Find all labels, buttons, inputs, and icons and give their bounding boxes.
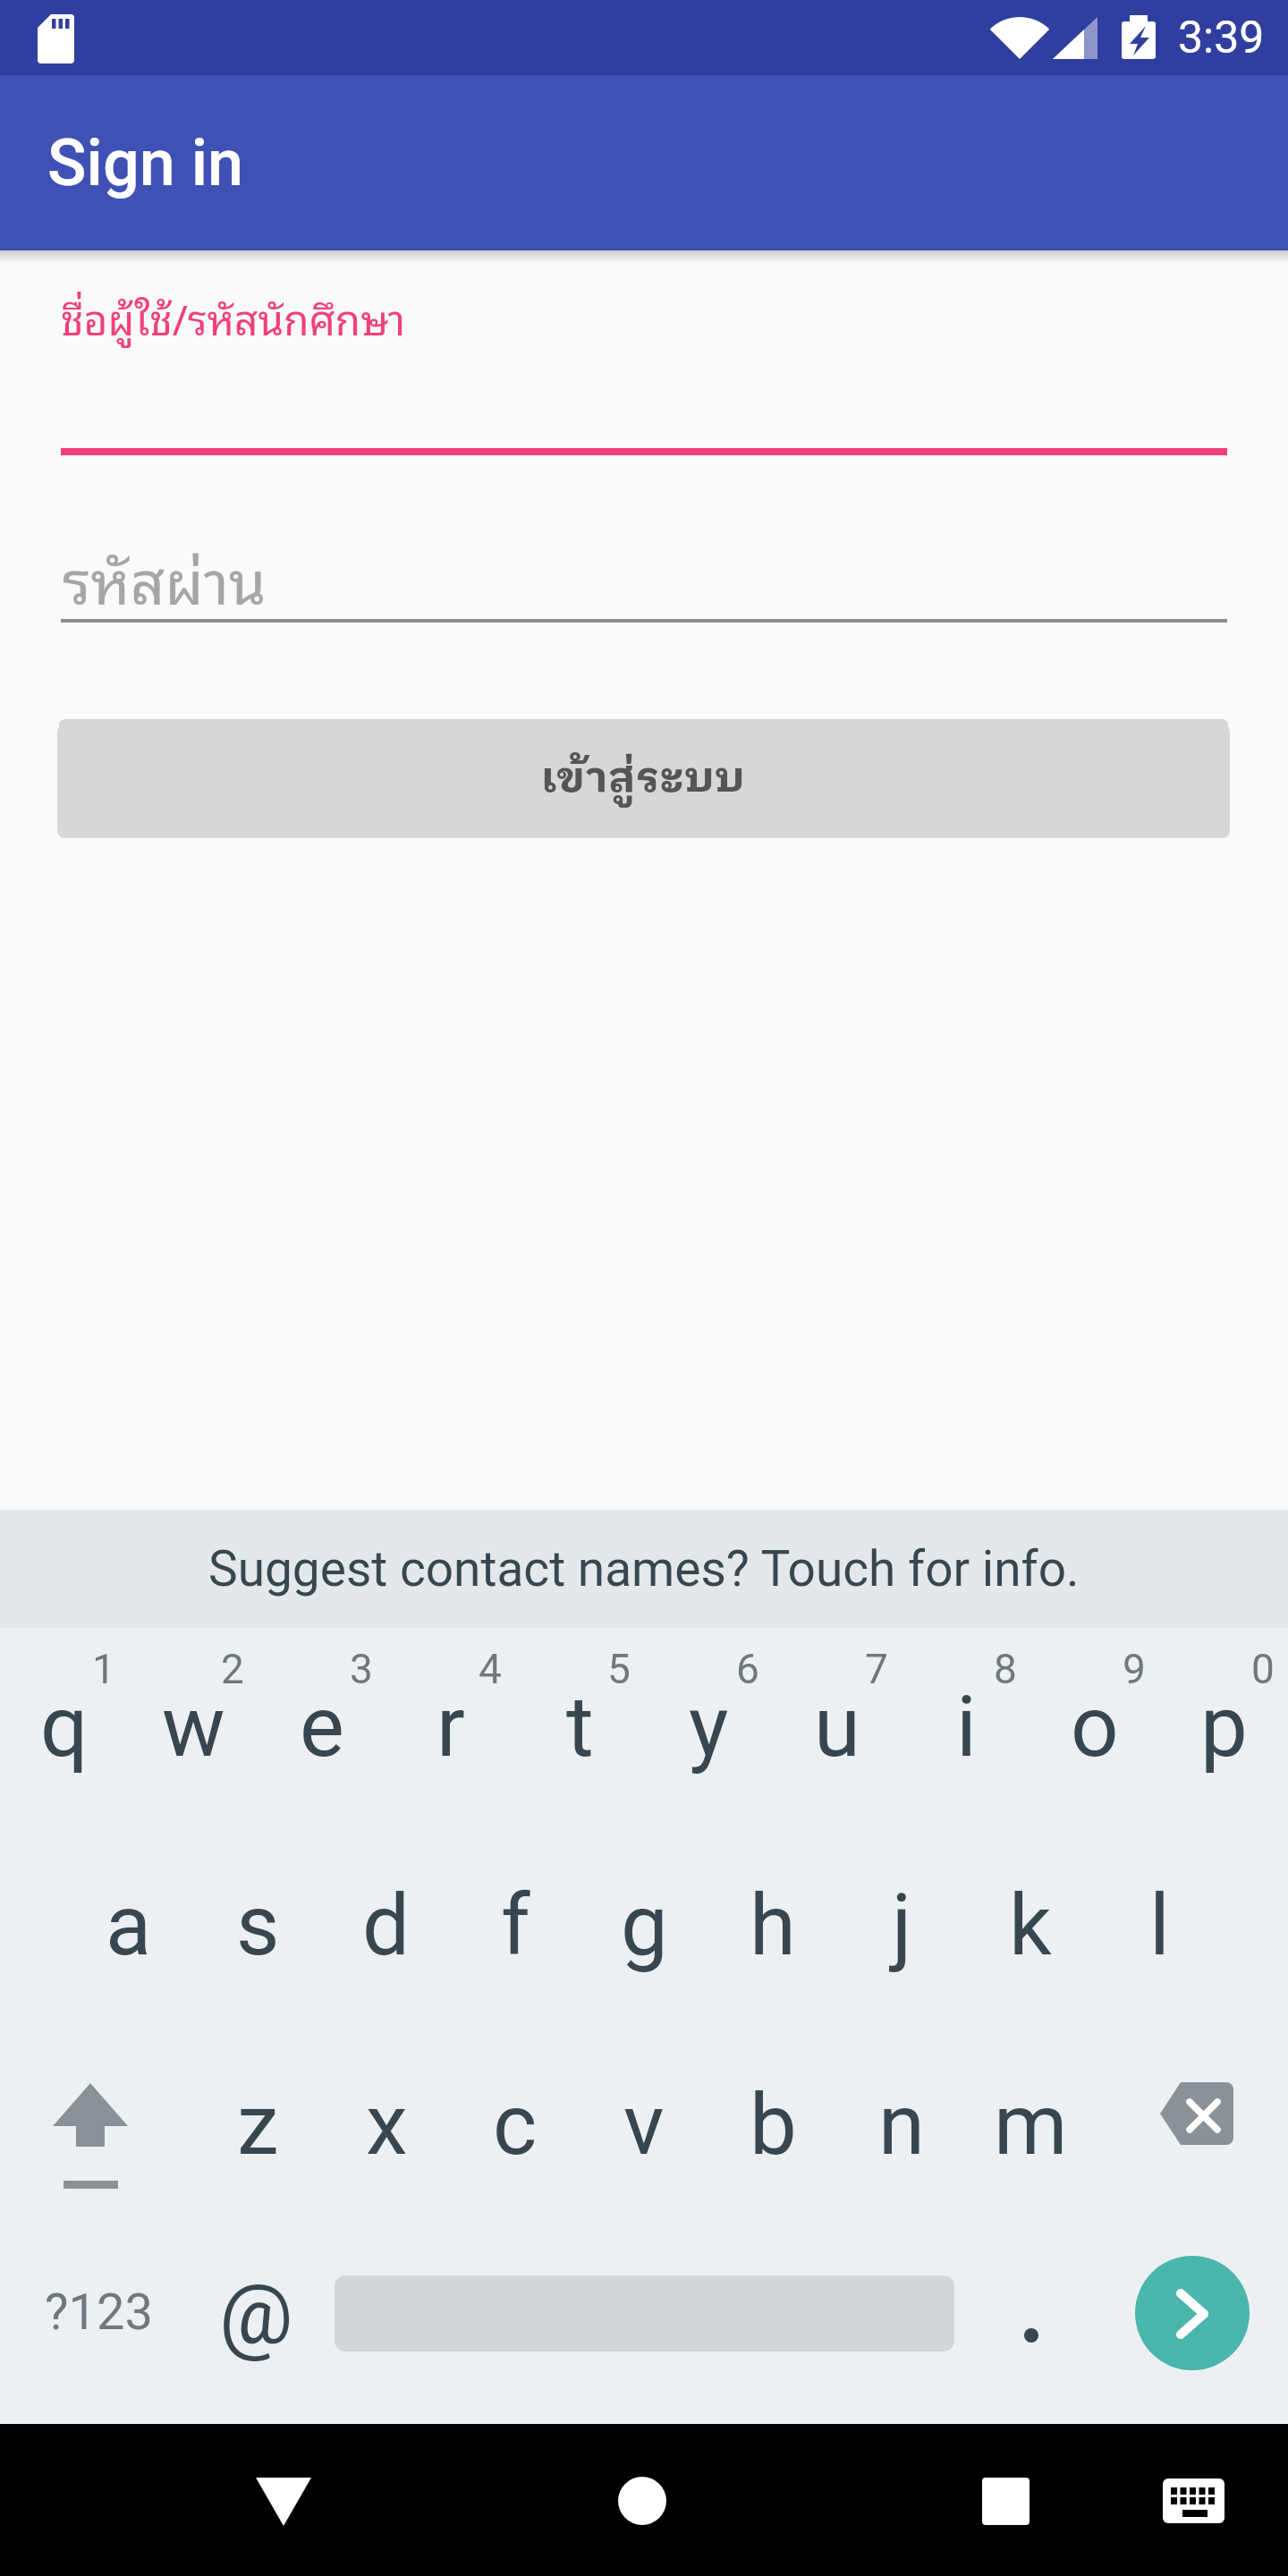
staticText: Sign in [47,125,244,200]
button[interactable]: x [322,2026,451,2224]
staticText: v [623,2076,665,2174]
button[interactable]: @ [202,2216,309,2414]
button[interactable]: j [837,1826,966,2025]
staticText: d [362,1877,411,1975]
staticText: j [892,1877,912,1975]
button[interactable]: a [64,1826,193,2025]
staticText: 3 [350,1645,373,1693]
staticText: h [750,1877,796,1975]
staticText: z [237,2076,279,2174]
staticText: @ [219,2267,293,2363]
button[interactable]: c [451,2026,580,2224]
staticText: w [162,1678,225,1776]
button[interactable] [1127,2044,1270,2207]
staticText: s [236,1877,280,1975]
button[interactable]: t [515,1628,644,1826]
staticText: 4 [479,1645,502,1693]
staticText: x [366,2076,408,2174]
button[interactable]: เข้าสู่ระบบ [59,719,1228,833]
staticText: 3:39 [1178,12,1265,64]
button[interactable]: s [193,1826,322,2025]
staticText: e [300,1678,344,1776]
button[interactable]: k [966,1826,1095,2025]
staticText: เข้าสู่ระบบ [541,743,746,814]
button[interactable]: z [193,2026,322,2224]
staticText: 7 [865,1645,888,1693]
staticText: b [750,2076,797,2174]
button[interactable]: i [902,1628,1030,1826]
staticText: 6 [736,1645,759,1693]
staticText: i [956,1678,977,1776]
button[interactable]: h [708,1826,837,2025]
staticText: c [493,2076,538,2174]
button[interactable] [580,2442,705,2560]
staticText: y [689,1678,729,1776]
staticText: 9 [1123,1645,1146,1693]
staticText: t [566,1678,594,1776]
staticText: a [106,1877,152,1975]
button[interactable]: p [1159,1628,1288,1826]
button[interactable]: r [386,1628,515,1826]
staticText: n [878,2076,925,2174]
button[interactable]: o [1030,1628,1159,1826]
button[interactable] [1134,2260,1247,2373]
staticText: 0 [1251,1645,1275,1693]
staticText: f [501,1877,530,1975]
staticText: ชื่อผู้ใช้/รหัสนักศึกษา [61,284,406,350]
staticText: 8 [994,1645,1017,1693]
staticText: 2 [221,1645,244,1693]
button[interactable] [0,1510,1288,1628]
button[interactable] [943,2442,1068,2560]
button[interactable]: q [0,1628,129,1826]
button[interactable]: ?123 [36,2213,161,2411]
staticText: 1 [92,1645,115,1693]
staticText: Suggest contact names? Touch for info. [208,1540,1080,1597]
button[interactable]: n [837,2026,966,2224]
staticText: l [1149,1877,1170,1975]
staticText: m [994,2076,1068,2174]
staticText: ?123 [45,2283,153,2342]
staticText: o [1071,1678,1119,1776]
button[interactable]: w [129,1628,258,1826]
button[interactable] [220,2442,345,2560]
button[interactable]: e [258,1628,386,1826]
button[interactable]: y [644,1628,773,1826]
staticText: g [621,1877,668,1975]
button[interactable] [27,2044,170,2207]
staticText: รหัสผ่าน [63,530,267,614]
staticText: q [40,1678,89,1776]
button[interactable]: d [322,1826,451,2025]
staticText: k [1009,1877,1052,1975]
staticText: 5 [607,1645,631,1693]
button[interactable]: b [708,2026,837,2224]
button[interactable]: u [773,1628,902,1826]
button[interactable] [61,448,1227,455]
button[interactable]: l [1095,1826,1224,2025]
button[interactable]: g [580,1826,708,2025]
button[interactable]: f [451,1826,580,2025]
staticText: r [436,1678,465,1776]
staticText: p [1200,1678,1248,1776]
button[interactable] [1136,2442,1252,2560]
button[interactable]: m [966,2026,1095,2224]
staticText: u [814,1678,860,1776]
button[interactable]: v [580,2026,708,2224]
